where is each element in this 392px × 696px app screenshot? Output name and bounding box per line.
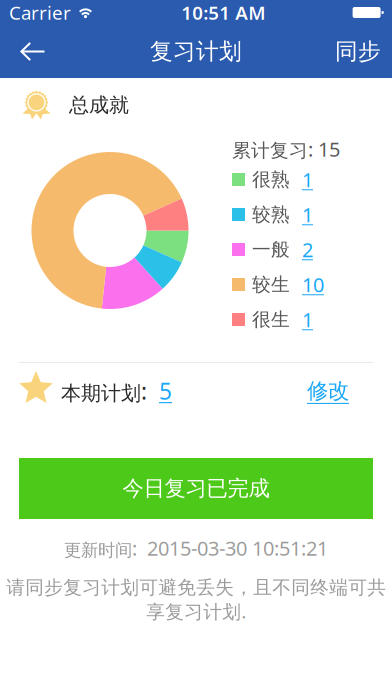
button[interactable]: 5 bbox=[159, 376, 172, 406]
staticText: 10 bbox=[302, 271, 324, 298]
staticText: 累计复习: 15 bbox=[232, 136, 340, 162]
button[interactable]: 1 bbox=[302, 166, 313, 193]
staticText: 10:51 AM bbox=[181, 0, 265, 25]
staticText: 2 bbox=[302, 236, 313, 263]
button[interactable]: 1 bbox=[302, 306, 313, 333]
staticText: 较生 bbox=[252, 273, 290, 296]
staticText: 更新时间: 2015-03-30 10:51:21 bbox=[64, 535, 328, 561]
button[interactable]: 2 bbox=[302, 236, 313, 263]
staticText: 一般 bbox=[252, 238, 290, 261]
button[interactable]: 修改 bbox=[307, 378, 349, 404]
button[interactable]: 10 bbox=[302, 271, 324, 298]
staticText: 1 bbox=[302, 201, 313, 228]
staticText: 本期计划: bbox=[61, 376, 147, 406]
button[interactable]: 今日复习已完成 bbox=[19, 458, 373, 519]
staticText: 总成就 bbox=[69, 93, 129, 117]
staticText: 很熟 bbox=[252, 168, 290, 191]
staticText: 修改 bbox=[307, 378, 349, 404]
staticText: 1 bbox=[302, 306, 313, 333]
button[interactable]: 同步 bbox=[321, 25, 392, 78]
button[interactable]: Back bbox=[0, 25, 59, 78]
button[interactable]: 1 bbox=[302, 201, 313, 228]
staticText: 很生 bbox=[252, 308, 290, 331]
staticText: 请同步复习计划可避免丢失，且不同终端可共享复习计划. bbox=[6, 576, 386, 624]
staticText: 同步 bbox=[335, 38, 381, 65]
staticText: 5 bbox=[159, 376, 172, 406]
staticText: 较熟 bbox=[252, 203, 290, 226]
staticText: 复习计划 bbox=[150, 38, 242, 65]
staticText: Carrier bbox=[9, 0, 71, 25]
staticText: 今日复习已完成 bbox=[122, 475, 269, 502]
staticText: 1 bbox=[302, 166, 313, 193]
